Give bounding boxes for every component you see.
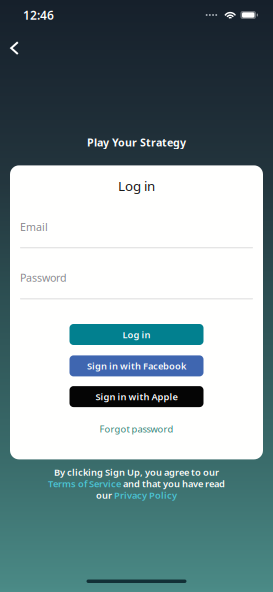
- staticText: By clicking Sign Up, you agree to our: [54, 466, 219, 478]
- staticText: Sign in with Apple: [95, 390, 177, 403]
- staticText: Password: [20, 270, 67, 285]
- staticText: Log in: [118, 177, 155, 195]
- staticText: Terms of Service: [48, 477, 121, 490]
- staticText: Email: [20, 220, 48, 234]
- staticText: Forgot password: [99, 423, 173, 435]
- button[interactable]: Back: [0, 35, 27, 61]
- staticText: Sign in with Facebook: [87, 360, 186, 372]
- staticText: Privacy Policy: [114, 489, 177, 501]
- staticText: and that you have read: [121, 477, 225, 490]
- button[interactable]: Terms of Service: [48, 477, 121, 490]
- staticText: our: [96, 489, 114, 501]
- staticText: Log in: [122, 328, 150, 341]
- button[interactable]: Privacy Policy: [114, 489, 177, 501]
- button[interactable]: Sign in with Apple: [69, 386, 203, 407]
- staticText: 12:46: [23, 7, 54, 23]
- button[interactable]: Forgot password: [99, 423, 173, 435]
- staticText: Play Your Strategy: [87, 135, 186, 149]
- button[interactable]: Log in: [69, 324, 203, 345]
- button[interactable]: Sign in with Facebook: [69, 355, 203, 376]
